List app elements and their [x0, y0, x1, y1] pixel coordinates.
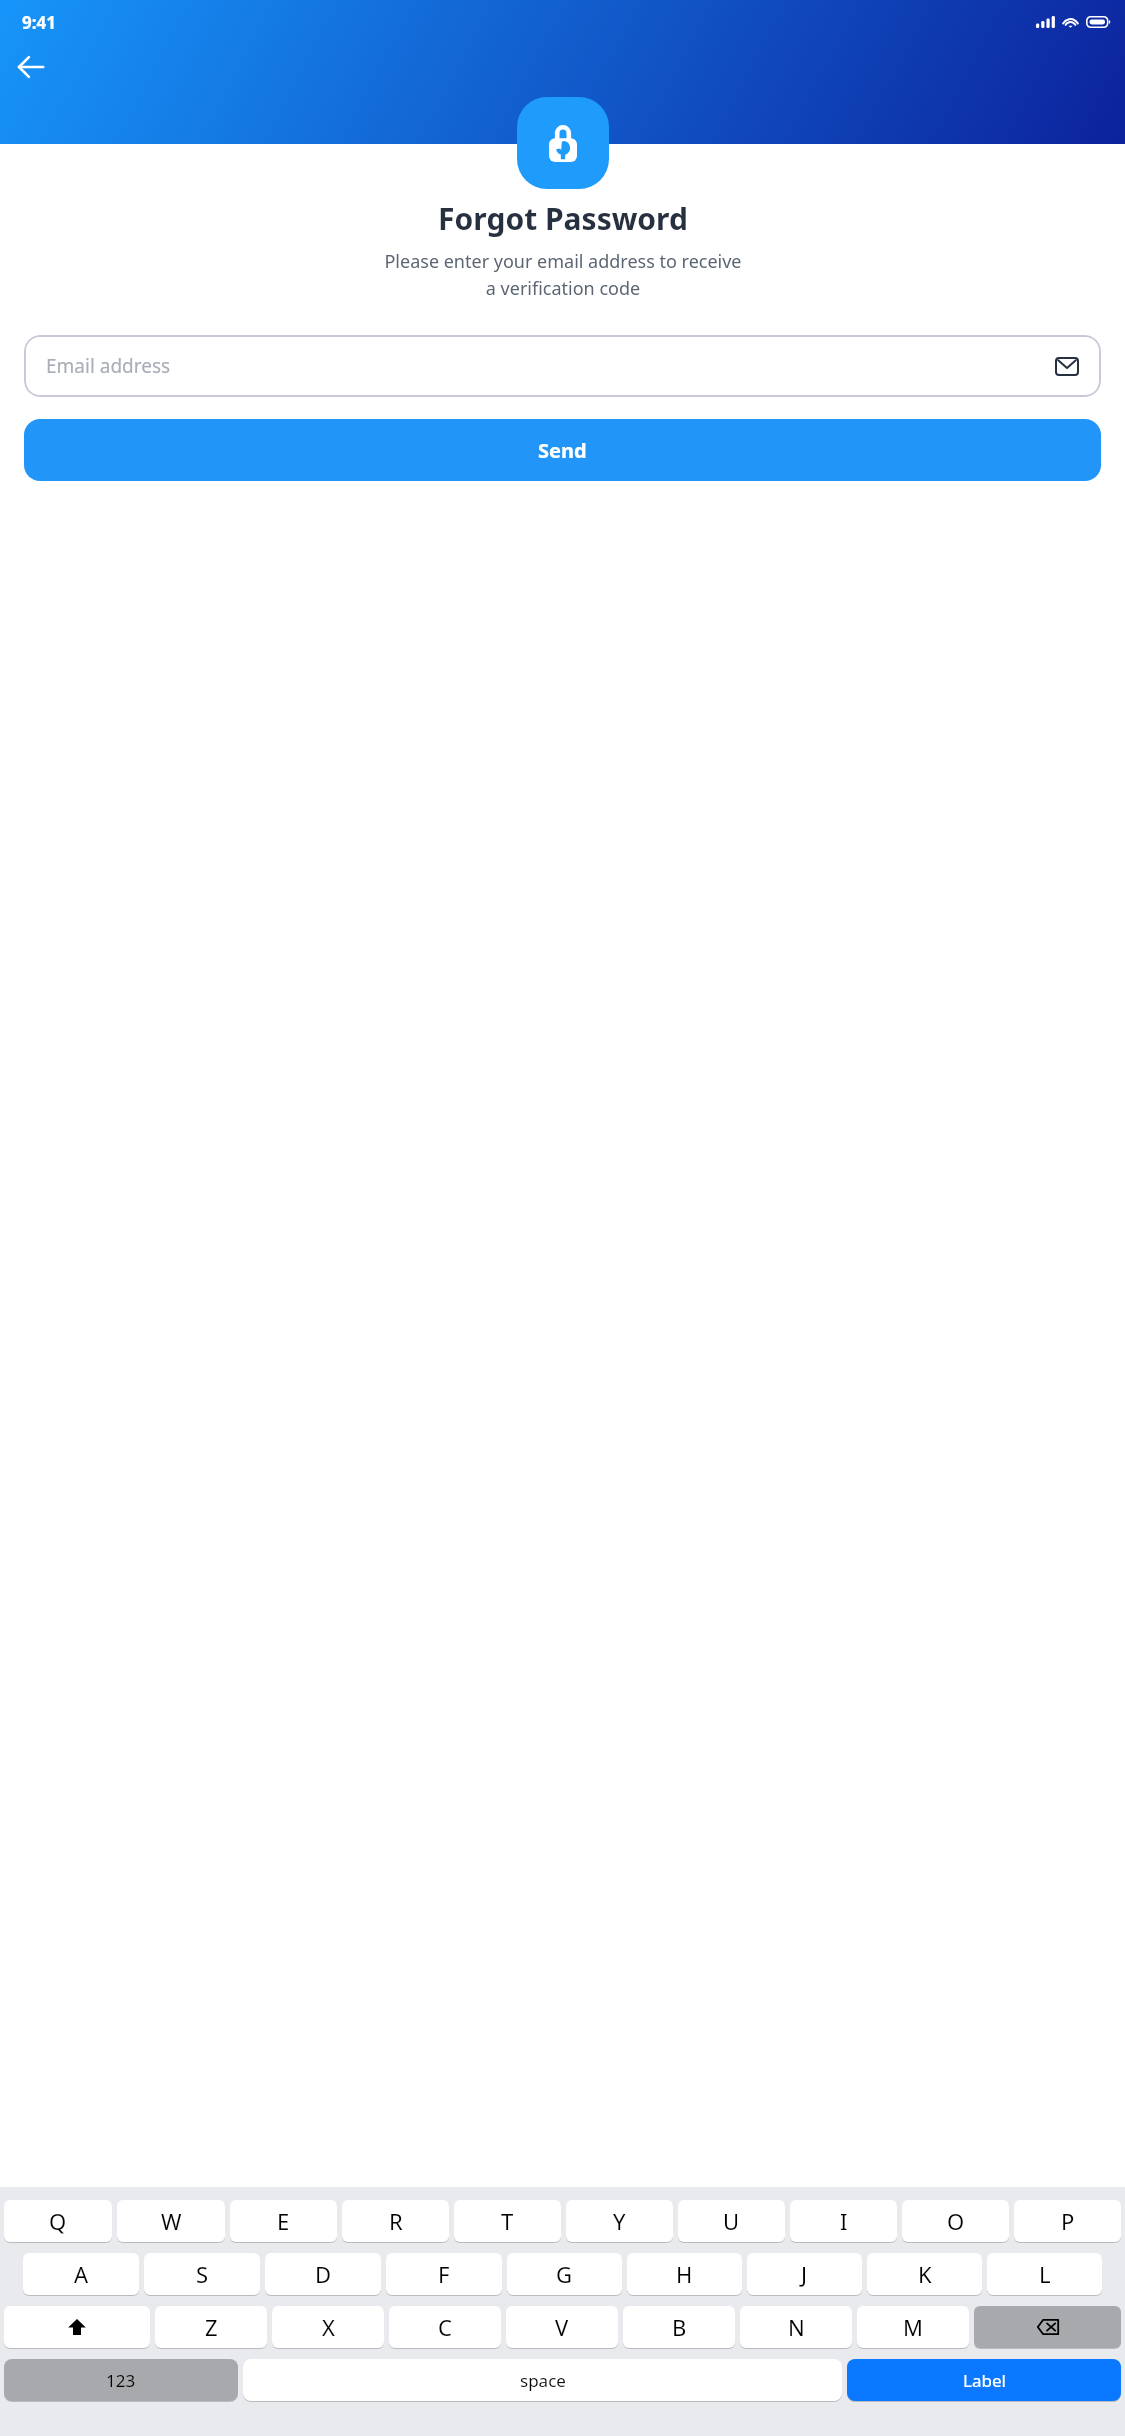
staticText: Y	[613, 2206, 626, 2236]
staticText: G	[556, 2259, 573, 2289]
staticText: U	[723, 2206, 740, 2236]
staticText: B	[672, 2312, 687, 2342]
button[interactable]: L	[987, 2253, 1102, 2295]
staticText: Label	[963, 2369, 1006, 2392]
button[interactable]: P	[1014, 2200, 1121, 2242]
staticText: Please enter your email address to recei…	[384, 249, 742, 300]
button[interactable]: M	[857, 2306, 969, 2348]
staticText: M	[903, 2312, 923, 2342]
button[interactable]: J	[747, 2253, 862, 2295]
staticText: X	[322, 2312, 335, 2342]
button[interactable]: Send	[24, 419, 1101, 481]
staticText: N	[788, 2312, 805, 2342]
staticText: P	[1061, 2206, 1075, 2236]
staticText: T	[501, 2206, 514, 2236]
button[interactable]: D	[265, 2253, 381, 2295]
staticText: 9:41	[22, 11, 56, 34]
button[interactable]: S	[144, 2253, 260, 2295]
staticText: H	[676, 2259, 693, 2289]
staticText: A	[74, 2259, 89, 2289]
button[interactable]: C	[389, 2306, 501, 2348]
button[interactable]: Y	[566, 2200, 673, 2242]
button[interactable]: F	[386, 2253, 502, 2295]
button[interactable]: Shift	[4, 2306, 150, 2348]
staticText: Forgot Password	[438, 198, 688, 239]
button[interactable]: I	[790, 2200, 897, 2242]
button[interactable]: K	[867, 2253, 982, 2295]
button[interactable]: 123	[4, 2359, 238, 2401]
staticText: Z	[205, 2312, 218, 2342]
button[interactable]: H	[627, 2253, 742, 2295]
button[interactable]: Back	[9, 45, 53, 89]
staticText: space	[520, 2369, 566, 2392]
staticText: F	[438, 2259, 450, 2289]
button[interactable]: G	[507, 2253, 622, 2295]
button[interactable]: R	[342, 2200, 449, 2242]
button[interactable]: N	[740, 2306, 852, 2348]
button[interactable]: Email address	[24, 335, 1101, 397]
button[interactable]: space	[243, 2359, 842, 2401]
button[interactable]: U	[678, 2200, 785, 2242]
button[interactable]: W	[117, 2200, 225, 2242]
staticText: I	[840, 2206, 848, 2236]
button[interactable]: E	[230, 2200, 337, 2242]
staticText: Q	[49, 2206, 67, 2236]
staticText: R	[389, 2206, 403, 2236]
button[interactable]: A	[23, 2253, 139, 2295]
button[interactable]: Label	[847, 2359, 1121, 2401]
staticText: Email address	[46, 353, 171, 379]
staticText: J	[801, 2259, 808, 2289]
staticText: D	[315, 2259, 332, 2289]
button[interactable]: Q	[4, 2200, 112, 2242]
button[interactable]: B	[623, 2306, 735, 2348]
staticText: 123	[106, 2369, 136, 2392]
staticText: Send	[538, 437, 587, 464]
button[interactable]: V	[506, 2306, 618, 2348]
staticText: C	[438, 2312, 452, 2342]
button[interactable]: X	[272, 2306, 384, 2348]
staticText: O	[947, 2206, 965, 2236]
staticText: E	[277, 2206, 290, 2236]
staticText: W	[161, 2206, 182, 2236]
button[interactable]: T	[454, 2200, 561, 2242]
staticText: V	[555, 2312, 569, 2342]
staticText: S	[196, 2259, 209, 2289]
button[interactable]: Z	[155, 2306, 267, 2348]
staticText: L	[1039, 2259, 1051, 2289]
button[interactable]: O	[902, 2200, 1009, 2242]
staticText: K	[918, 2259, 932, 2289]
button[interactable]: Backspace	[974, 2306, 1121, 2348]
